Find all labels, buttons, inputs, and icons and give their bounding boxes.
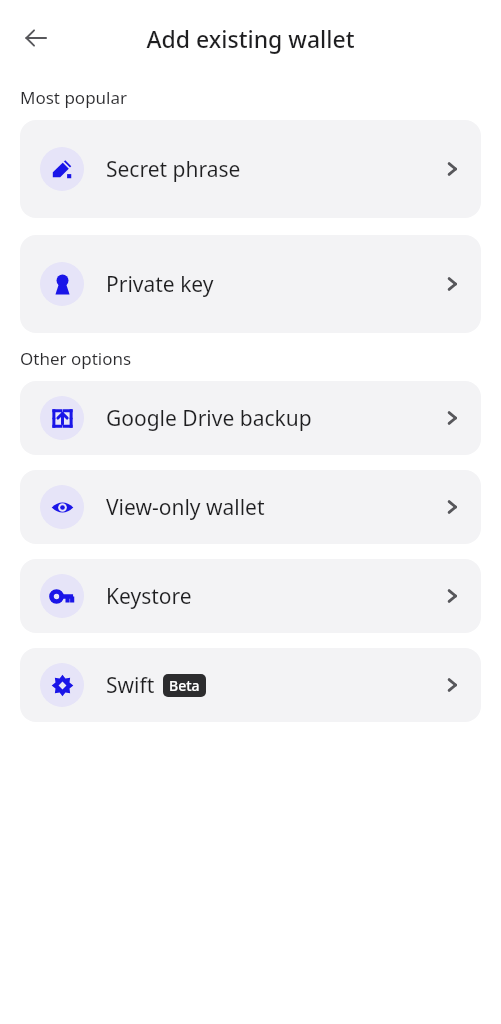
button[interactable]: Keystore	[20, 559, 481, 633]
button[interactable]: Private key	[20, 235, 481, 333]
staticText: Keystore	[106, 582, 192, 611]
button[interactable]: Back	[12, 14, 60, 62]
staticText: Other options	[20, 347, 132, 370]
staticText: Add existing wallet	[146, 23, 355, 54]
staticText: View-only wallet	[106, 493, 265, 522]
staticText: Beta	[169, 676, 200, 695]
staticText: Swift	[106, 671, 155, 700]
button[interactable]: Swift	[20, 648, 481, 722]
button[interactable]: Google Drive backup	[20, 381, 481, 455]
staticText: Secret phrase	[106, 155, 241, 184]
staticText: Google Drive backup	[106, 404, 312, 433]
staticText: Private key	[106, 270, 214, 299]
button[interactable]: Secret phrase	[20, 120, 481, 218]
button[interactable]: View-only wallet	[20, 470, 481, 544]
staticText: Most popular	[20, 86, 128, 109]
